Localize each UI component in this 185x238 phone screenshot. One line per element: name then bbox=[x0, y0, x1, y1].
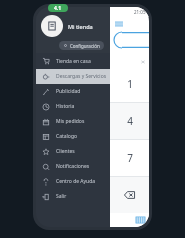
button[interactable]: Abrir menú bbox=[115, 19, 127, 29]
staticText: Tienda en casa bbox=[56, 58, 91, 65]
staticText: Publicidad bbox=[56, 88, 81, 95]
button[interactable]: 4 bbox=[110, 103, 149, 139]
button[interactable]: 1 bbox=[110, 66, 149, 102]
staticText: Centro de Ayuda bbox=[56, 178, 96, 185]
staticText: 4.1 bbox=[54, 5, 62, 12]
staticText: 21:05 bbox=[134, 9, 146, 15]
button[interactable]: Notificaciones bbox=[36, 159, 110, 174]
button[interactable]: Historia bbox=[36, 99, 110, 114]
staticText: Catalogo bbox=[56, 133, 77, 140]
button[interactable]: Salir bbox=[36, 189, 110, 204]
staticText: Clientes bbox=[56, 148, 75, 155]
button[interactable]: Configuración bbox=[59, 41, 104, 50]
staticText: Configuración bbox=[70, 43, 100, 49]
button[interactable]: Teclado bbox=[135, 215, 145, 225]
staticText: Mi tienda bbox=[68, 23, 93, 30]
button[interactable]: 7 bbox=[110, 140, 149, 176]
staticText: Salir bbox=[56, 193, 67, 200]
staticText: 7 bbox=[127, 151, 133, 165]
button[interactable]: Centro de Ayuda bbox=[36, 174, 110, 189]
staticText: 4 bbox=[127, 114, 133, 128]
staticText: Mis pedidos bbox=[56, 118, 85, 125]
staticText: Descargas y Servicios bbox=[56, 73, 107, 80]
staticText: 1 bbox=[127, 77, 133, 91]
button[interactable]: Publicidad bbox=[36, 84, 110, 99]
button[interactable]: Catalogo bbox=[36, 129, 110, 144]
staticText: Historia bbox=[56, 103, 75, 110]
staticText: Notificaciones bbox=[56, 163, 90, 170]
button[interactable]: Descargas y Servicios bbox=[36, 69, 110, 84]
button[interactable]: Clientes bbox=[36, 144, 110, 159]
button[interactable] bbox=[110, 177, 149, 213]
button[interactable]: Tienda en casa bbox=[36, 53, 110, 69]
button[interactable]: Mis pedidos bbox=[36, 114, 110, 129]
button[interactable]: Perfil bbox=[41, 15, 63, 37]
